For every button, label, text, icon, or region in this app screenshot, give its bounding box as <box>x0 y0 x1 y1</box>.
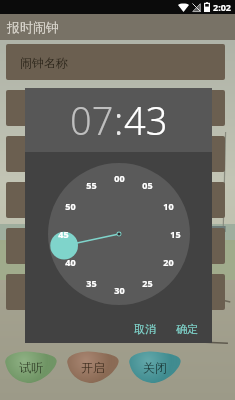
button[interactable]: 关闭 <box>126 350 184 384</box>
staticText: 30 <box>114 284 125 296</box>
button[interactable]: 07 <box>70 94 114 146</box>
staticText: 00 <box>114 172 125 184</box>
staticText: 报时闹钟 <box>7 19 59 35</box>
staticText: 确定 <box>176 322 198 336</box>
staticText: 25 <box>142 277 153 289</box>
staticText: 05 <box>142 179 153 191</box>
staticText: 闹钟名称 <box>20 55 68 70</box>
button[interactable]: 取消 <box>126 318 164 340</box>
button[interactable]: 开启 <box>64 350 122 384</box>
button[interactable]: Select minutes <box>48 163 190 305</box>
staticText: 开启 <box>81 360 105 375</box>
button[interactable]: 试听 <box>2 350 60 384</box>
staticText: 关闭 <box>143 360 167 375</box>
button[interactable] <box>6 90 225 126</box>
staticText: 10 <box>163 200 174 212</box>
staticText: 45 <box>58 228 69 240</box>
button[interactable] <box>6 274 225 310</box>
button[interactable] <box>6 182 225 218</box>
button[interactable]: 闹钟名称 <box>6 44 225 80</box>
staticText: : <box>114 94 124 146</box>
staticText: 2:02 <box>213 1 231 13</box>
staticText: 取消 <box>134 322 156 336</box>
staticText: 40 <box>65 256 76 268</box>
staticText: 55 <box>86 179 97 191</box>
button[interactable]: 43 <box>124 94 168 146</box>
button[interactable]: 确定 <box>168 318 212 340</box>
button[interactable] <box>6 228 225 264</box>
staticText: 35 <box>86 277 97 289</box>
staticText: 试听 <box>19 360 43 375</box>
staticText: 20 <box>163 256 174 268</box>
staticText: 50 <box>65 200 76 212</box>
staticText: 15 <box>170 228 181 240</box>
button[interactable] <box>6 136 225 172</box>
